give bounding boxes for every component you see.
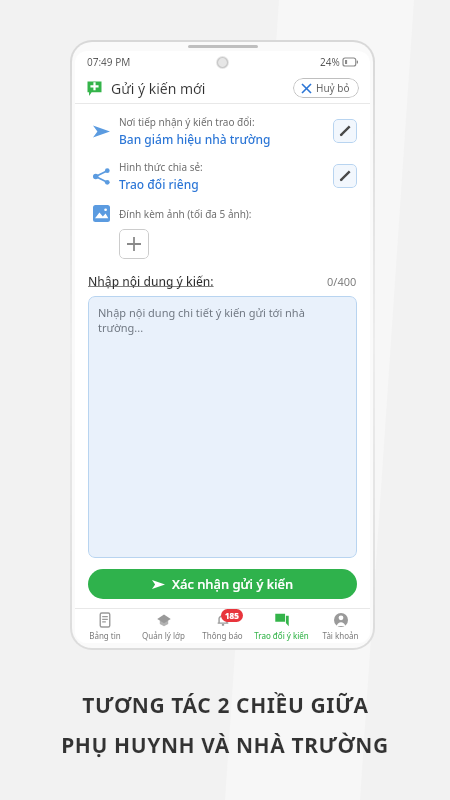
button[interactable]: Hình thức chia sẻ: <box>88 160 357 192</box>
staticText: 185 <box>225 610 239 621</box>
staticText: 07:49 PM <box>87 55 131 69</box>
staticText: Bảng tin <box>89 630 121 641</box>
staticText: Đính kèm ảnh (tối đa 5 ảnh): <box>119 207 252 221</box>
button[interactable]: Quản lý lớp <box>134 609 193 643</box>
staticText: Huỷ bỏ <box>316 81 350 95</box>
staticText: 0/400 <box>327 274 357 289</box>
button[interactable]: Trao đổi ý kiến <box>252 609 311 643</box>
staticText: Ban giám hiệu nhà trường <box>119 131 271 147</box>
button[interactable]: 185 <box>193 609 252 643</box>
staticText: Gửi ý kiến mới <box>111 79 206 98</box>
staticText: Trao đổi ý kiến <box>254 630 309 641</box>
staticText: Quản lý lớp <box>142 630 185 641</box>
staticText: Nhập nội dung chi tiết ý kiến gửi tới nh… <box>98 305 347 335</box>
button[interactable]: Nơi tiếp nhận ý kiến trao đổi: <box>88 115 357 147</box>
button[interactable]: Xác nhận gửi ý kiến <box>88 569 357 599</box>
staticText: 24% <box>320 55 340 69</box>
button[interactable]: Chỉnh sửa <box>333 164 357 188</box>
button[interactable]: Huỷ bỏ <box>293 78 359 98</box>
staticText: PHỤ HUYNH VÀ NHÀ TRƯỜNG <box>61 731 389 760</box>
staticText: Thông báo <box>202 630 243 641</box>
button[interactable]: Nhập nội dung chi tiết ý kiến gửi tới nh… <box>88 296 357 558</box>
staticText: Hình thức chia sẻ: <box>119 160 203 174</box>
staticText: Xác nhận gửi ý kiến <box>172 575 294 593</box>
staticText: Trao đổi riêng <box>119 176 199 192</box>
staticText: Nhập nội dung ý kiến: <box>88 273 214 289</box>
staticText: Tài khoản <box>322 630 359 641</box>
staticText: Nơi tiếp nhận ý kiến trao đổi: <box>119 115 255 129</box>
staticText: TƯƠNG TÁC 2 CHIỀU GIỮA <box>82 691 369 720</box>
button[interactable]: Bảng tin <box>75 609 134 643</box>
button[interactable]: Thêm ảnh <box>119 229 149 259</box>
button[interactable]: Chỉnh sửa <box>333 119 357 143</box>
button[interactable]: Tài khoản <box>311 609 370 643</box>
